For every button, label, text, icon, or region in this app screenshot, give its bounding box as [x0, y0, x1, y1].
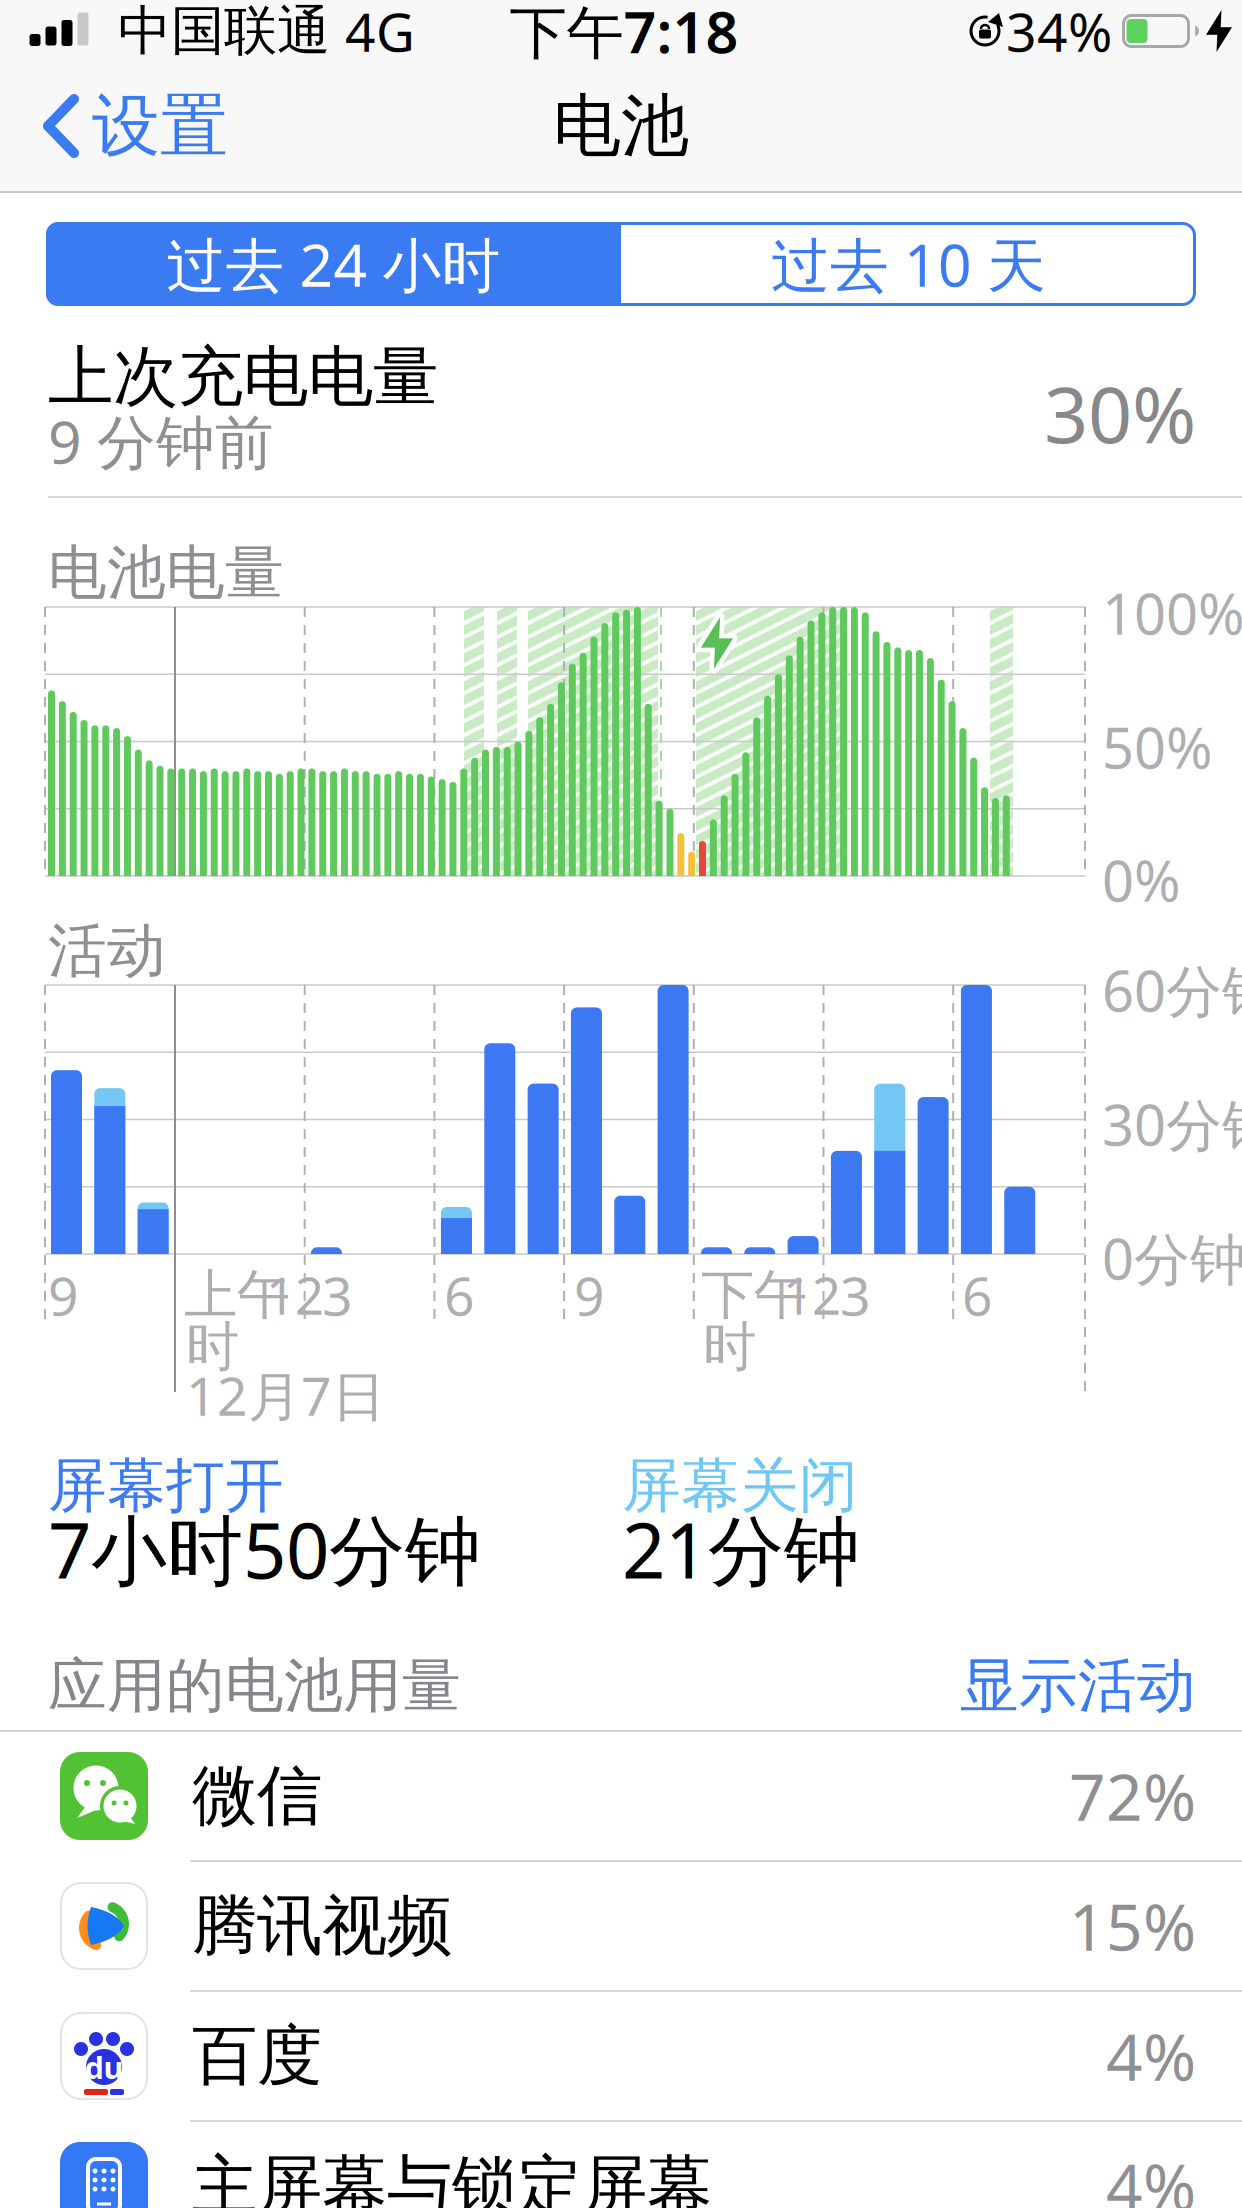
staticText: 0分钟	[1102, 1221, 1242, 1295]
staticText: 下午	[701, 1262, 807, 1328]
staticText: 主屏幕与锁定屏幕	[192, 2146, 712, 2208]
staticText: 百度	[192, 2016, 322, 2096]
staticText: 6	[444, 1260, 475, 1330]
staticText: 活动	[48, 915, 166, 987]
staticText: 过去 10 天	[771, 225, 1046, 303]
staticText: 3	[322, 1260, 353, 1330]
button[interactable]: 显示活动	[960, 1650, 1196, 1722]
button[interactable]: 过去 10 天	[621, 222, 1196, 306]
button[interactable]: du	[0, 1991, 1242, 2121]
staticText: 设置	[92, 84, 228, 168]
staticText: 9	[48, 1260, 79, 1330]
staticText: 3	[840, 1260, 871, 1330]
staticText: 中国联通	[118, 0, 330, 64]
staticText: 屏幕关闭	[622, 1450, 858, 1522]
staticText: 100%	[1102, 576, 1242, 650]
staticText: 上次充电电量	[48, 337, 438, 417]
staticText: 0%	[1102, 843, 1181, 917]
staticText: 微信	[192, 1756, 322, 1836]
staticText: 21分钟	[622, 1498, 860, 1599]
staticText: 屏幕打开	[48, 1450, 284, 1522]
staticText: 4G	[345, 0, 415, 66]
staticText: 9 分钟前	[48, 402, 274, 480]
staticText: 12月7日	[186, 1360, 385, 1430]
staticText: 6	[962, 1260, 993, 1330]
staticText: 34%	[1006, 0, 1112, 66]
staticText: 显示活动	[960, 1650, 1196, 1722]
staticText: 下午7:18	[509, 0, 738, 69]
staticText: 时	[703, 1314, 756, 1380]
staticText: 4%	[1106, 2013, 1196, 2098]
button[interactable]: 微信	[0, 1731, 1242, 1861]
staticText: 9	[574, 1260, 605, 1330]
staticText: 50%	[1102, 710, 1213, 784]
staticText: 电池电量	[48, 537, 284, 609]
staticText: 腾讯视频	[192, 1886, 452, 1966]
staticText: 60分钟	[1102, 953, 1242, 1027]
button[interactable]: 过去 24 小时	[46, 222, 621, 306]
staticText: 4%	[1106, 2143, 1196, 2208]
staticText: 12	[783, 1261, 841, 1329]
staticText: 时	[186, 1314, 239, 1380]
staticText: 30%	[1044, 362, 1196, 464]
staticText: 12	[266, 1261, 324, 1329]
staticText: 7小时50分钟	[48, 1498, 481, 1599]
staticText: 上午	[184, 1262, 290, 1328]
staticText: 72%	[1069, 1753, 1196, 1838]
button[interactable]: 腾讯视频	[0, 1861, 1242, 1991]
staticText: 过去 24 小时	[166, 225, 500, 303]
staticText: 电池	[553, 84, 689, 168]
button[interactable]: 设置	[0, 60, 260, 192]
staticText: 30分钟	[1102, 1087, 1242, 1161]
staticText: 15%	[1069, 1883, 1196, 1968]
button[interactable]: 主屏幕与锁定屏幕	[0, 2121, 1242, 2208]
staticText: 应用的电池用量	[48, 1650, 461, 1722]
staticText: du	[84, 2047, 123, 2087]
